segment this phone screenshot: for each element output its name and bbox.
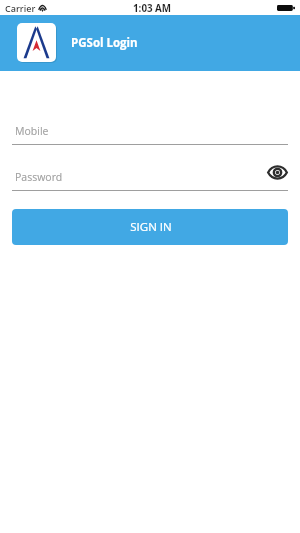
staticText: PGSol Login bbox=[71, 35, 138, 51]
staticText: Carrier bbox=[5, 2, 36, 14]
staticText: Password bbox=[15, 170, 63, 184]
button[interactable]: Password bbox=[12, 170, 288, 191]
staticText: Mobile bbox=[15, 124, 49, 138]
button[interactable]: Show password bbox=[265, 162, 289, 182]
button[interactable]: Mobile bbox=[12, 124, 288, 145]
staticText: SIGN IN bbox=[130, 219, 172, 235]
button[interactable]: SIGN IN bbox=[12, 209, 288, 245]
staticText: 1:03 AM bbox=[133, 2, 172, 15]
